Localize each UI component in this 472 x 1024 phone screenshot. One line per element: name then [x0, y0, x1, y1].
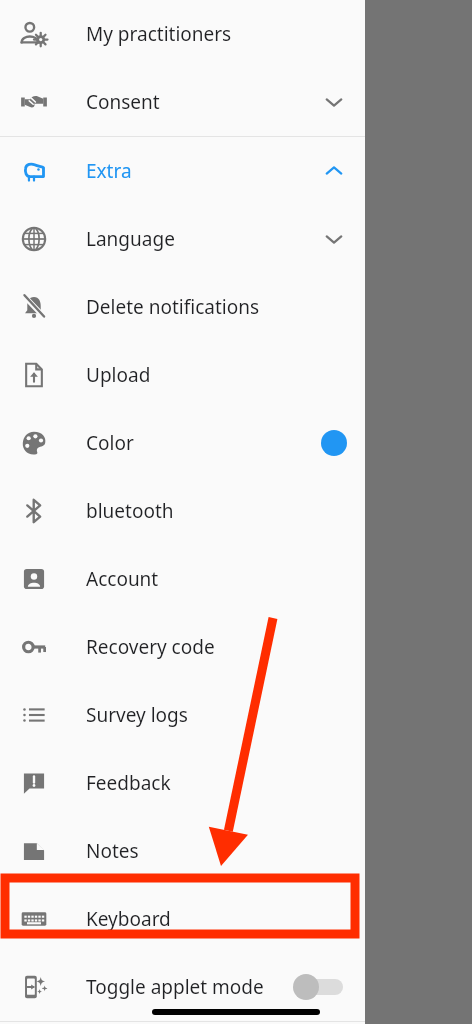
button[interactable]: bluetooth	[0, 477, 365, 545]
button[interactable]: Extra	[0, 137, 365, 205]
staticText: Keyboard	[86, 906, 171, 932]
button[interactable]: Color	[0, 409, 365, 477]
button[interactable]: My practitioners	[0, 0, 365, 68]
staticText: Color	[86, 430, 134, 456]
button[interactable]: Language	[0, 205, 365, 273]
staticText: Extra	[86, 158, 132, 184]
button[interactable]: Delete notifications	[0, 273, 365, 341]
staticText: Feedback	[86, 770, 171, 796]
staticText: Delete notifications	[86, 294, 260, 320]
staticText: Toggle applet mode	[86, 974, 264, 1000]
staticText: Account	[86, 566, 159, 592]
staticText: bluetooth	[86, 498, 174, 524]
staticText: Upload	[86, 362, 151, 388]
button[interactable]: Toggle applet mode	[293, 974, 343, 1000]
button[interactable]: Pick color	[321, 430, 347, 456]
staticText: Consent	[86, 89, 160, 115]
staticText: Survey logs	[86, 702, 188, 728]
button[interactable]: Upload	[0, 341, 365, 409]
button[interactable]: Consent	[0, 68, 365, 136]
button[interactable]: Keyboard	[0, 885, 365, 953]
button[interactable]: Survey logs	[0, 681, 365, 749]
button[interactable]: Toggle applet mode	[0, 953, 365, 1021]
staticText: My practitioners	[86, 21, 232, 47]
button[interactable]: Account	[0, 545, 365, 613]
button[interactable]: Feedback	[0, 749, 365, 817]
staticText: Language	[86, 226, 175, 252]
staticText: Notes	[86, 838, 139, 864]
button[interactable]: Notes	[0, 817, 365, 885]
button[interactable]: Recovery code	[0, 613, 365, 681]
staticText: Recovery code	[86, 634, 215, 660]
